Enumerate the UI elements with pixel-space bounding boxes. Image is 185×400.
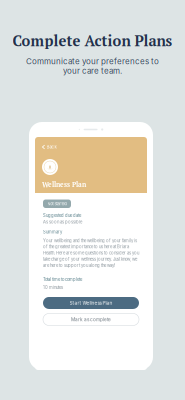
staticText: Total time to complete	[43, 277, 82, 282]
staticText: Complete Action Plans	[12, 31, 172, 50]
staticText: Wellness Plan	[42, 180, 86, 189]
staticText: Suggested due date	[43, 213, 81, 218]
button[interactable]: Mark as complete	[43, 313, 139, 325]
staticText: As soon as possible	[43, 219, 82, 225]
staticText: Communicate your preferences to	[26, 56, 159, 66]
staticText: Mark as complete	[71, 317, 111, 322]
staticText: 10 minutes	[43, 285, 63, 290]
staticText: Start Wellness Plan	[69, 300, 112, 306]
staticText: Back	[46, 144, 56, 150]
staticText: your care team.	[63, 66, 122, 76]
staticText: Your wellbeing and the wellbeing of your…	[43, 238, 139, 268]
button[interactable]: Back	[42, 144, 56, 150]
staticText: Summary	[43, 230, 62, 235]
button[interactable]: Start Wellness Plan	[43, 297, 139, 309]
staticText: Not Started	[47, 201, 66, 206]
